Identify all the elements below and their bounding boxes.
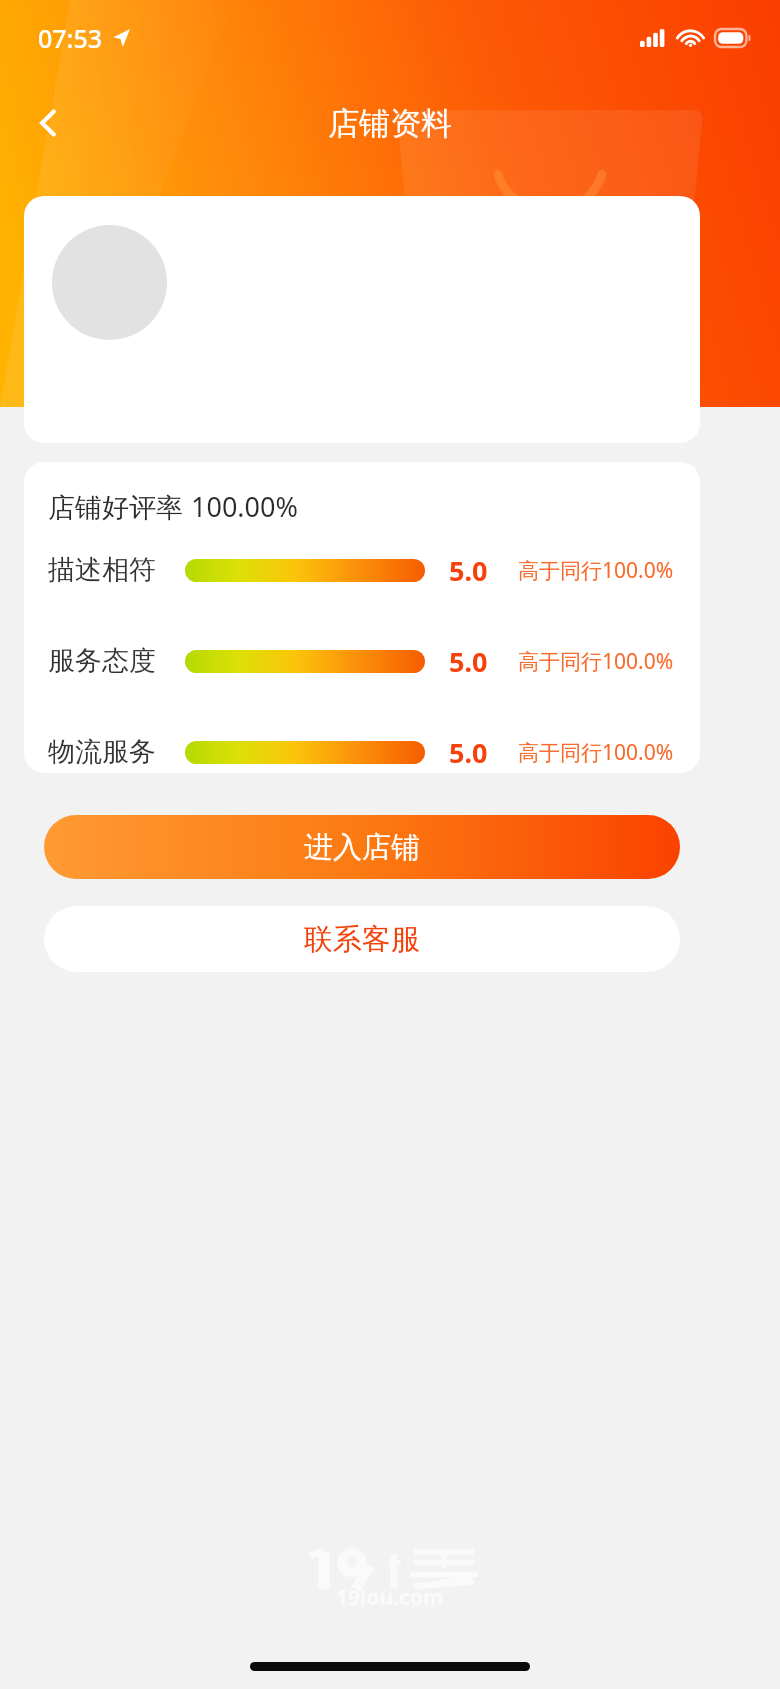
button[interactable]: 联系客服 xyxy=(44,906,680,972)
staticText: 物流服务 xyxy=(48,735,156,769)
staticText: 19lou.com xyxy=(336,1583,444,1612)
staticText: 联系客服 xyxy=(304,921,420,958)
staticText: 5.0 xyxy=(449,552,488,588)
staticText: 店铺好评率 xyxy=(48,488,191,525)
staticText: 高于同行100.0% xyxy=(518,738,674,767)
button[interactable] xyxy=(24,196,700,443)
staticText: 5.0 xyxy=(449,643,488,679)
staticText: 进入店铺 xyxy=(304,829,420,866)
staticText: 07:53 xyxy=(38,21,103,55)
staticText: 店铺资料 xyxy=(328,104,452,143)
staticText: 5.0 xyxy=(449,734,488,770)
button[interactable]: Back xyxy=(18,92,80,154)
staticText: 服务态度 xyxy=(48,644,156,678)
staticText: 100.00% xyxy=(191,488,298,525)
button[interactable]: 进入店铺 xyxy=(44,815,680,879)
staticText: 高于同行100.0% xyxy=(518,556,674,585)
staticText: 高于同行100.0% xyxy=(518,647,674,676)
staticText: 描述相符 xyxy=(48,553,156,587)
